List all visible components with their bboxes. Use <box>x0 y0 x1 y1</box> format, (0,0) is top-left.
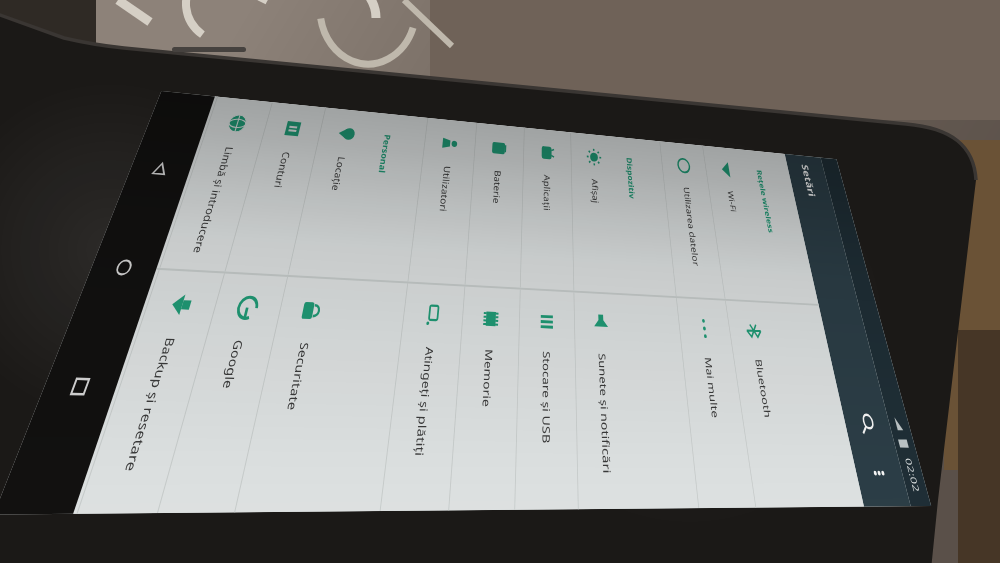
staticText: Utilizatori <box>437 165 453 212</box>
staticText: Wi-Fi <box>725 190 739 213</box>
staticText: 02:02 <box>903 458 923 492</box>
button[interactable]: Memorie <box>448 286 520 510</box>
staticText: Bluetooth <box>752 359 774 419</box>
button[interactable]: Bluetooth <box>725 301 811 507</box>
staticText: Conturi <box>271 151 293 188</box>
button[interactable]: Conturi <box>225 102 325 275</box>
button[interactable]: Utilizarea datelor <box>659 141 725 299</box>
button[interactable]: Wi-Fi <box>702 146 772 301</box>
button[interactable]: Mai multe <box>676 298 755 508</box>
button[interactable]: Locație <box>288 108 377 278</box>
staticText: Rețele wireless <box>754 169 776 234</box>
staticText: Utilizarea datelor <box>681 187 702 267</box>
button[interactable]: Acasă <box>96 244 152 291</box>
button[interactable]: Backup și resetare <box>76 270 224 514</box>
button[interactable]: Google <box>157 273 287 513</box>
staticText: Dispozitiv <box>624 157 637 200</box>
staticText: Memorie <box>479 349 496 408</box>
staticText: Sunete și notificări <box>596 353 614 474</box>
staticText: Afișaj <box>589 178 601 204</box>
staticText: Stocare și USB <box>539 351 553 444</box>
button[interactable]: Căutare <box>846 400 888 448</box>
staticText: Personal <box>376 134 393 173</box>
button[interactable]: Aplicații <box>520 128 573 290</box>
button[interactable]: Recente <box>48 359 112 414</box>
staticText: Aplicații <box>541 174 552 212</box>
staticText: Locație <box>329 156 348 191</box>
button[interactable]: Afișaj <box>570 132 625 293</box>
button[interactable]: Limbă și introducere de... <box>159 97 272 271</box>
button[interactable]: Mai multe opțiuni <box>857 448 901 499</box>
button[interactable]: Stocare și USB <box>514 289 578 510</box>
button[interactable]: Utilizatori <box>408 118 476 284</box>
button[interactable]: Înapoi <box>135 148 185 189</box>
button[interactable]: Sunete și notificări <box>573 292 639 509</box>
button[interactable]: Securitate <box>234 277 348 512</box>
staticText: Backup și resetare <box>120 337 179 472</box>
button[interactable]: Baterie <box>465 123 524 288</box>
staticText: Baterie <box>490 170 503 205</box>
staticText: Mai multe <box>702 357 722 419</box>
staticText: Limbă și introducere de... <box>184 146 236 270</box>
staticText: Setări <box>799 164 818 197</box>
button[interactable]: Atingeți și plătiți <box>380 283 464 511</box>
staticText: Securitate <box>283 342 312 411</box>
staticText: Google <box>218 340 247 390</box>
staticText: Atingeți și plătiți <box>411 347 437 457</box>
